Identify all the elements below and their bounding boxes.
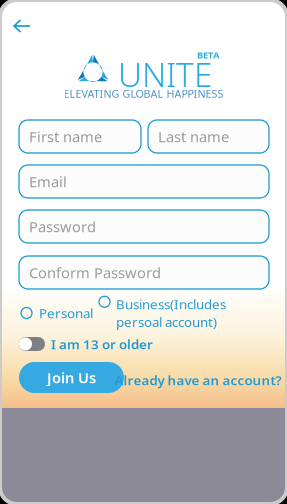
button[interactable]: Join Us [19,362,124,393]
staticText: Already have an account? [114,371,281,389]
staticText: Password [29,217,96,236]
staticText: Personal [39,304,93,322]
button[interactable]: Already have an account? [114,371,281,389]
button[interactable]: Back [13,13,43,39]
staticText: Last name [158,127,229,146]
staticText: ELEVATING GLOBAL HAPPINESS [63,86,223,101]
staticText: Join Us [47,368,96,387]
staticText: BETA [197,49,219,61]
staticText: Email [29,172,67,191]
staticText: Conform Password [29,263,161,282]
staticText: Business(Includes persoal account) [116,295,226,331]
button[interactable]: Personal [21,304,101,322]
staticText: First name [29,127,102,146]
button[interactable]: I am 13 or older [19,335,179,353]
staticText: I am 13 or older [51,335,153,353]
staticText: UNITE [118,52,212,96]
button[interactable]: Business(Includes persoal account) [99,295,249,331]
